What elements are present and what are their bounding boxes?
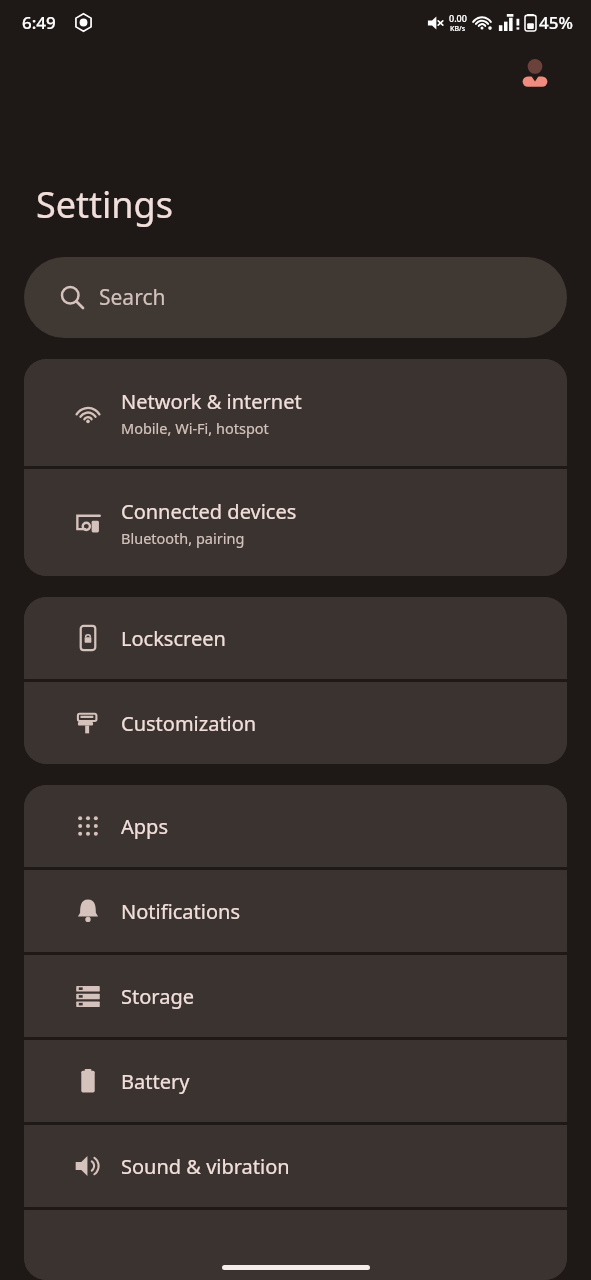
staticText: Storage	[121, 983, 194, 1010]
staticText: Connected devices	[121, 498, 297, 525]
staticText: Apps	[121, 813, 168, 840]
staticText: Settings	[36, 180, 173, 229]
staticText: Customization	[121, 710, 257, 737]
staticText: Battery	[121, 1068, 190, 1095]
button[interactable]: Storage	[24, 955, 567, 1037]
staticText: 45%	[539, 11, 573, 34]
button[interactable]: Sound & vibration	[24, 1125, 567, 1207]
button[interactable]: Search	[24, 257, 567, 338]
staticText: Search	[99, 283, 166, 312]
staticText: Notifications	[121, 898, 240, 925]
staticText: 0.00	[449, 12, 467, 24]
button[interactable]: Account	[513, 52, 557, 96]
button[interactable]: Apps	[24, 785, 567, 867]
staticText: Network & internet	[121, 388, 302, 415]
staticText: Mobile, Wi-Fi, hotspot	[121, 418, 269, 438]
staticText: KB/s	[450, 24, 466, 34]
staticText: Sound & vibration	[121, 1153, 290, 1180]
button[interactable]: Connected devices	[24, 469, 567, 576]
staticText: Bluetooth, pairing	[121, 528, 245, 548]
staticText: Lockscreen	[121, 625, 226, 652]
button[interactable]: Lockscreen	[24, 597, 567, 679]
button[interactable]	[24, 1210, 567, 1280]
button[interactable]: Notifications	[24, 870, 567, 952]
button[interactable]: Customization	[24, 682, 567, 764]
button[interactable]: Network & internet	[24, 359, 567, 466]
button[interactable]: Battery	[24, 1040, 567, 1122]
staticText: 6:49	[22, 11, 56, 34]
